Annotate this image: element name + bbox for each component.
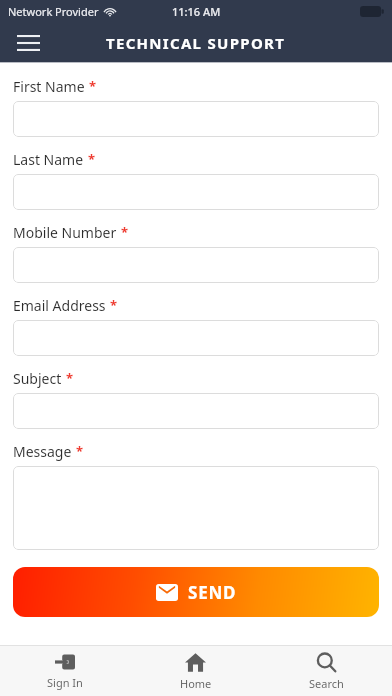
- button[interactable]: Mobile Number input field: [13, 247, 379, 283]
- staticText: Network Provider: [8, 4, 99, 19]
- staticText: *: [110, 296, 118, 314]
- staticText: TECHNICAL SUPPORT: [106, 33, 286, 53]
- button[interactable]: Subject input field: [13, 393, 379, 429]
- button[interactable]: Open navigation menu: [10, 25, 46, 61]
- staticText: *: [76, 442, 84, 460]
- button[interactable]: Search: [261, 646, 392, 696]
- button[interactable]: Email Address input field: [13, 320, 379, 356]
- staticText: SEND: [188, 581, 237, 604]
- staticText: *: [66, 369, 74, 387]
- staticText: First Name: [13, 77, 85, 96]
- staticText: Sign In: [47, 675, 83, 690]
- staticText: Email Address: [13, 296, 106, 315]
- button[interactable]: Home: [130, 646, 261, 696]
- staticText: 11:16 AM: [172, 4, 221, 19]
- staticText: Subject: [13, 369, 62, 388]
- button[interactable]: Message input field: [13, 466, 379, 550]
- button[interactable]: SEND: [13, 567, 379, 617]
- staticText: Search: [309, 676, 344, 691]
- staticText: *: [89, 77, 97, 95]
- staticText: *: [121, 223, 129, 241]
- button[interactable]: Sign In: [0, 646, 130, 696]
- staticText: *: [88, 150, 96, 168]
- staticText: Home: [180, 676, 212, 691]
- staticText: Last Name: [13, 150, 84, 169]
- button[interactable]: Last Name input field: [13, 174, 379, 210]
- button[interactable]: First Name input field: [13, 101, 379, 137]
- staticText: Mobile Number: [13, 223, 117, 242]
- staticText: Message: [13, 442, 72, 461]
